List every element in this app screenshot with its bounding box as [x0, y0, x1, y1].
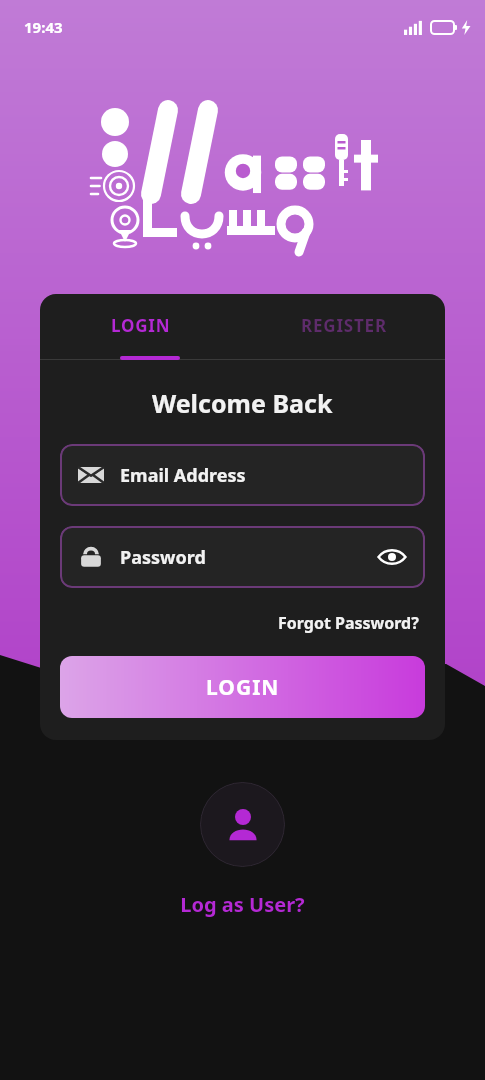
staticText: Log as User? — [180, 891, 305, 918]
button[interactable]: Email Address — [60, 444, 425, 506]
staticText: LOGIN — [206, 673, 280, 702]
button[interactable]: REGISTER — [242, 294, 445, 356]
button[interactable]: Log as User — [200, 782, 285, 867]
staticText: Password — [120, 545, 206, 570]
button[interactable]: Password — [60, 526, 425, 588]
button[interactable]: Forgot Password? — [272, 606, 425, 640]
staticText: Email Address — [120, 463, 246, 488]
other: Show password — [377, 547, 407, 567]
staticText: Welcome Back — [152, 386, 333, 420]
staticText: 19:43 — [24, 17, 63, 37]
button[interactable]: LOGIN — [40, 294, 242, 356]
button[interactable]: Log as User? — [174, 885, 311, 924]
button[interactable]: LOGIN — [60, 656, 425, 718]
staticText: Forgot Password? — [278, 612, 419, 634]
staticText: LOGIN — [111, 314, 171, 337]
staticText: REGISTER — [301, 314, 387, 337]
